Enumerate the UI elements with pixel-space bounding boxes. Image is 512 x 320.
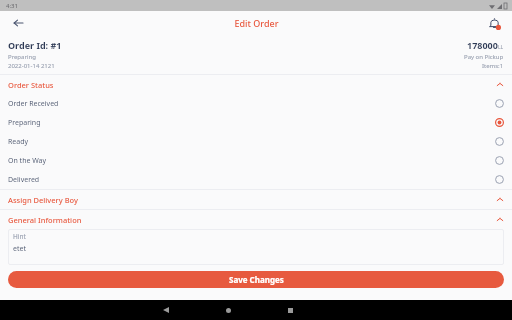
button[interactable]: Hint bbox=[8, 229, 504, 265]
button[interactable]: Back bbox=[8, 13, 28, 33]
staticText: LL bbox=[498, 44, 504, 51]
staticText: etet bbox=[13, 244, 26, 254]
button[interactable]: Order Status bbox=[0, 75, 512, 94]
staticText: 178000 bbox=[467, 39, 498, 51]
staticText: Hint bbox=[13, 232, 26, 241]
staticText: Items:1 bbox=[482, 62, 504, 70]
staticText: Preparing bbox=[8, 53, 36, 61]
button[interactable]: On the Way bbox=[0, 151, 512, 170]
button[interactable]: Save Changes bbox=[8, 271, 504, 288]
button[interactable]: General Information bbox=[0, 210, 512, 229]
staticText: Delivered bbox=[8, 175, 495, 185]
staticText: Edit Order bbox=[234, 17, 279, 29]
button[interactable]: Delivered bbox=[0, 170, 512, 189]
staticText: Ready bbox=[8, 137, 495, 147]
button[interactable]: Preparing bbox=[0, 113, 512, 132]
staticText: Order Received bbox=[8, 99, 495, 109]
button[interactable]: Order Received bbox=[0, 94, 512, 113]
staticText: On the Way bbox=[8, 156, 495, 166]
button[interactable]: Home bbox=[219, 301, 237, 319]
staticText: 2022-01-14 2121 bbox=[8, 62, 55, 70]
button[interactable]: Back bbox=[157, 301, 175, 319]
button[interactable]: Ready bbox=[0, 132, 512, 151]
staticText: 4:31 bbox=[6, 2, 18, 10]
button[interactable]: Assign Delivery Boy bbox=[0, 190, 512, 209]
staticText: Pay on Pickup bbox=[464, 53, 504, 61]
staticText: Assign Delivery Boy bbox=[8, 195, 496, 205]
staticText: Order Status bbox=[8, 80, 496, 90]
staticText: Order Id: #1 bbox=[8, 39, 62, 51]
staticText: Save Changes bbox=[229, 274, 284, 285]
staticText: Preparing bbox=[8, 118, 495, 128]
button[interactable]: Recent apps bbox=[281, 301, 299, 319]
button[interactable]: Notifications bbox=[484, 13, 504, 33]
staticText: General Information bbox=[8, 215, 496, 225]
